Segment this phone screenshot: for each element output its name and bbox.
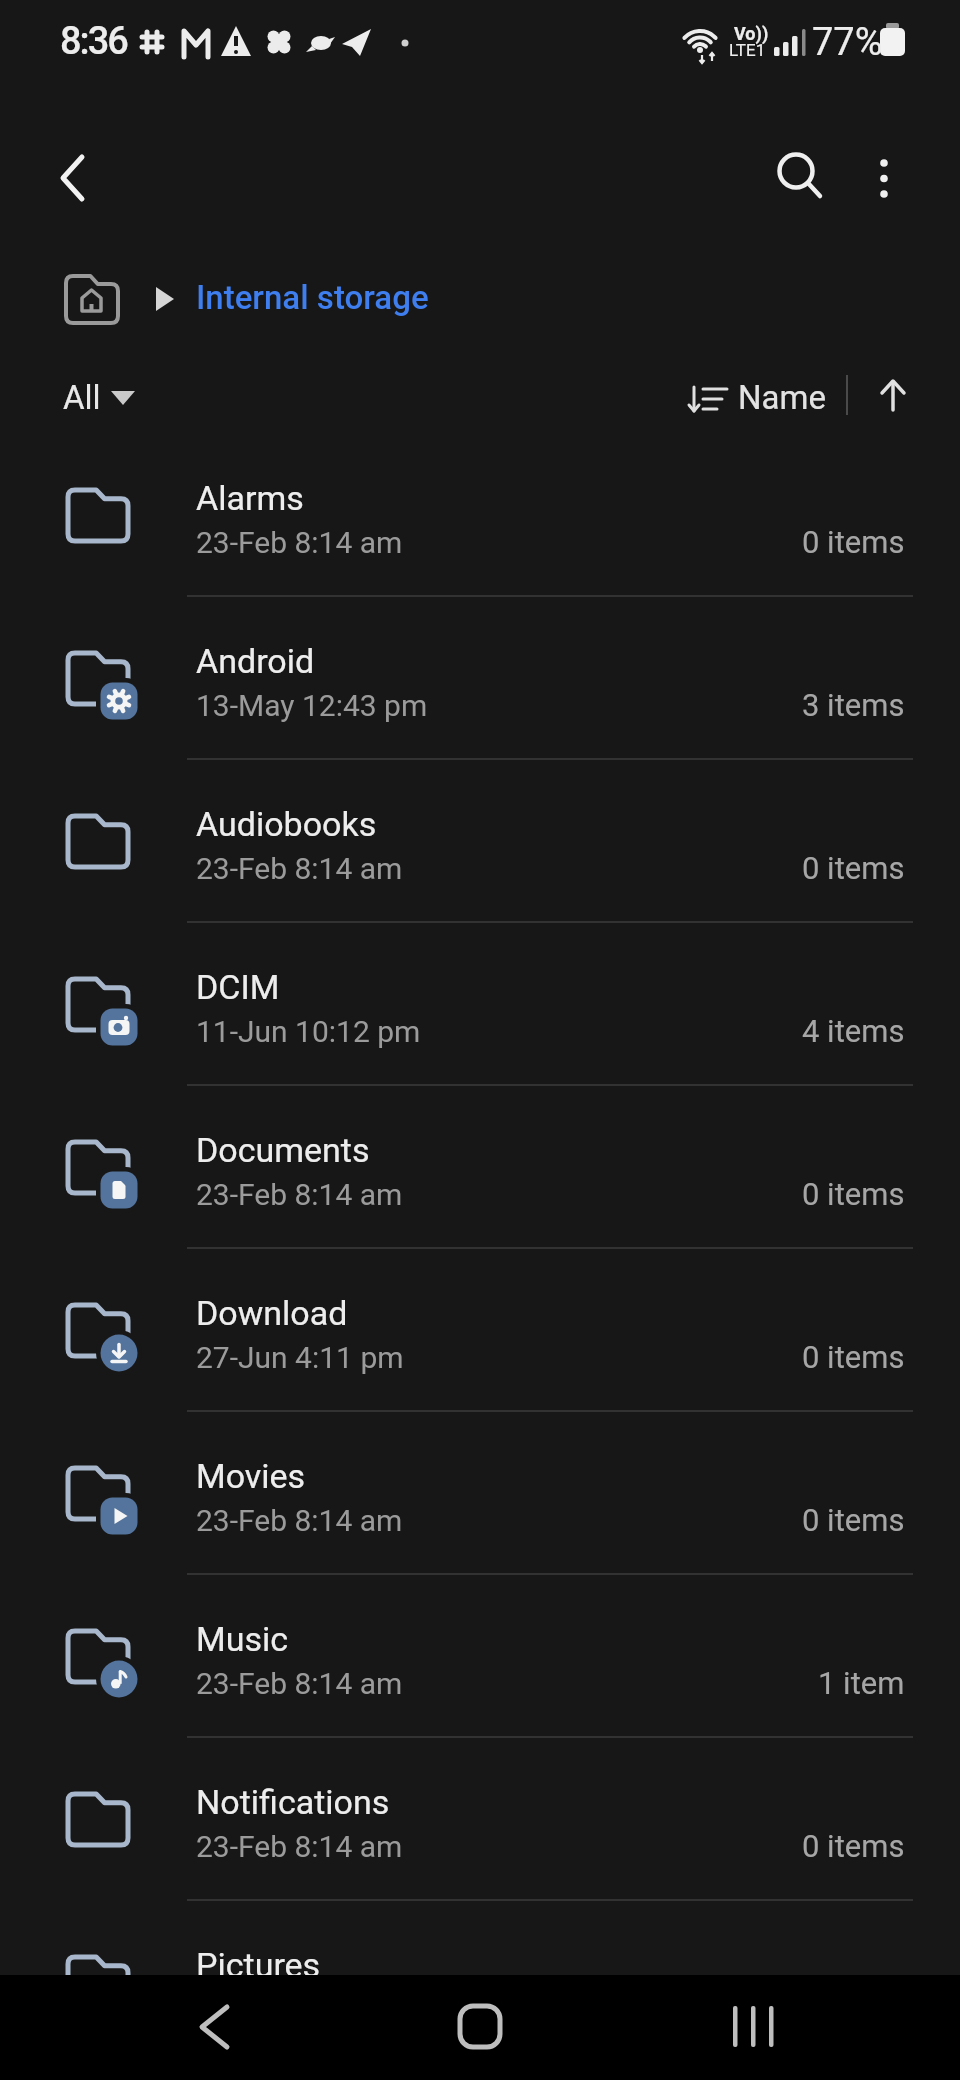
staticText: 0 items (802, 1828, 905, 1864)
button[interactable] (870, 365, 918, 421)
button[interactable]: Download (0, 1249, 960, 1412)
staticText: 27-Jun 4:11 pm (196, 1340, 404, 1375)
button[interactable]: Documents (0, 1086, 960, 1249)
button[interactable]: Notifications (0, 1738, 960, 1901)
staticText: 23-Feb 8:14 am (196, 1829, 403, 1864)
button[interactable] (440, 1987, 520, 2067)
button[interactable]: Android (0, 597, 960, 760)
staticText: DCIM (196, 967, 280, 1007)
staticText: 0 items (802, 1502, 905, 1538)
staticText: 13-May 12:43 pm (196, 688, 428, 723)
staticText: 23-Feb 8:14 am (196, 1666, 403, 1701)
staticText: Movies (196, 1456, 306, 1496)
staticText: Notifications (196, 1782, 390, 1822)
button[interactable] (64, 274, 120, 326)
staticText: Pictures (196, 1945, 321, 1985)
button[interactable] (40, 135, 104, 199)
staticText: 0 items (802, 850, 905, 886)
staticText: Internal storage (196, 278, 429, 317)
staticText: 0 items (802, 524, 905, 560)
staticText: Documents (196, 1130, 370, 1170)
staticText: Name (738, 378, 826, 417)
staticText: 1 item (818, 1665, 905, 1701)
button[interactable] (764, 139, 828, 203)
button[interactable]: Name (672, 363, 832, 423)
staticText: Vo)) (734, 23, 769, 44)
staticText: 23-Feb 8:14 am (196, 1177, 403, 1212)
button[interactable]: Pictures (0, 1901, 960, 2064)
button[interactable] (174, 1987, 254, 2067)
staticText: 4 items (802, 1013, 905, 1049)
staticText: 23-Feb 8:14 am (196, 851, 403, 886)
button[interactable]: Audiobooks (0, 760, 960, 923)
staticText: 23-Feb 8:14 am (196, 1992, 403, 2027)
button[interactable]: Movies (0, 1412, 960, 1575)
staticText: Android (196, 641, 315, 681)
button[interactable]: Alarms (0, 434, 960, 597)
staticText: Audiobooks (196, 804, 377, 844)
staticText: LTE1 (729, 40, 766, 60)
button[interactable]: Internal storage (196, 278, 429, 317)
staticText: 23-Feb 8:14 am (196, 1503, 403, 1538)
button[interactable]: DCIM (0, 923, 960, 1086)
button[interactable]: All (63, 378, 135, 417)
staticText: Alarms (196, 478, 304, 518)
button[interactable] (852, 139, 916, 203)
staticText: 8:36 (60, 19, 127, 64)
staticText: 23-Feb 8:14 am (196, 525, 403, 560)
staticText: All (63, 378, 101, 417)
staticText: Music (196, 1619, 289, 1659)
staticText: 0 items (802, 1176, 905, 1212)
staticText: 3 items (802, 687, 905, 723)
button[interactable]: Music (0, 1575, 960, 1738)
staticText: 77% (812, 20, 883, 65)
staticText: 11-Jun 10:12 pm (196, 1014, 421, 1049)
staticText: 0 items (802, 1339, 905, 1375)
staticText: Download (196, 1293, 348, 1333)
button[interactable] (713, 1987, 793, 2067)
